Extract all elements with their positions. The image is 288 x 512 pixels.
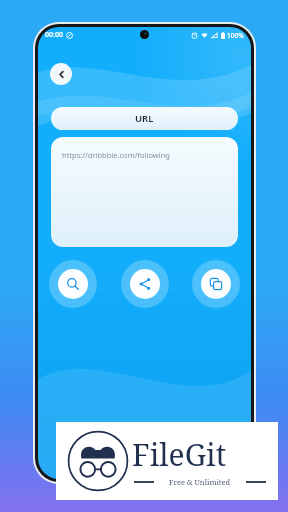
staticText: 100% [227,31,244,40]
staticText: 00:00 [45,30,63,40]
button[interactable]: Search [49,260,97,308]
staticText: https://dribbble.com/following [62,150,170,160]
button[interactable]: Share [121,260,169,308]
staticText: Free & Unlimited [169,477,231,487]
staticText: URL [135,112,154,125]
button[interactable]: https://dribbble.com/following [51,137,238,247]
button[interactable]: URL [51,107,238,130]
staticText: FileGit [132,434,227,475]
button[interactable]: Back [50,63,72,85]
button[interactable]: Copy [192,260,240,308]
button[interactable]: FileGit [56,422,278,500]
